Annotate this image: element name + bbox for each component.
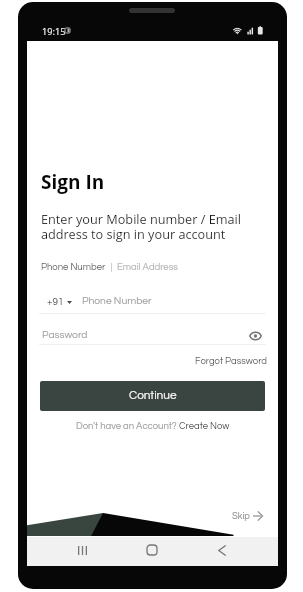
button[interactable]: Back [212, 540, 232, 560]
button[interactable]: Home [142, 540, 162, 560]
button[interactable]: Phone Number [41, 261, 106, 273]
staticText: Sign In [41, 169, 105, 195]
button[interactable]: Show password [246, 326, 265, 345]
button[interactable]: Recent apps [72, 540, 92, 560]
staticText: 19:15 [42, 25, 66, 38]
button[interactable]: +91 [47, 297, 72, 307]
staticText: Phone Number [82, 296, 152, 307]
button[interactable]: Don't have an Account? [74, 419, 232, 433]
staticText: +91 [47, 297, 64, 307]
staticText: Skip [232, 511, 250, 521]
staticText: Create Now [179, 421, 230, 431]
staticText: Email Address [117, 262, 178, 272]
staticText: Don't have an Account? [76, 421, 179, 431]
button[interactable]: Skip [230, 508, 265, 524]
staticText: Forgot Password [195, 356, 267, 366]
button[interactable]: Forgot Password [193, 354, 269, 368]
staticText: Continue [129, 389, 177, 401]
staticText: Password [42, 330, 88, 341]
button[interactable]: Continue [40, 381, 265, 411]
staticText: Phone Number [41, 262, 106, 272]
button[interactable]: Email Address [117, 261, 178, 273]
staticText: Enter your Mobile number / Email address… [41, 210, 241, 243]
